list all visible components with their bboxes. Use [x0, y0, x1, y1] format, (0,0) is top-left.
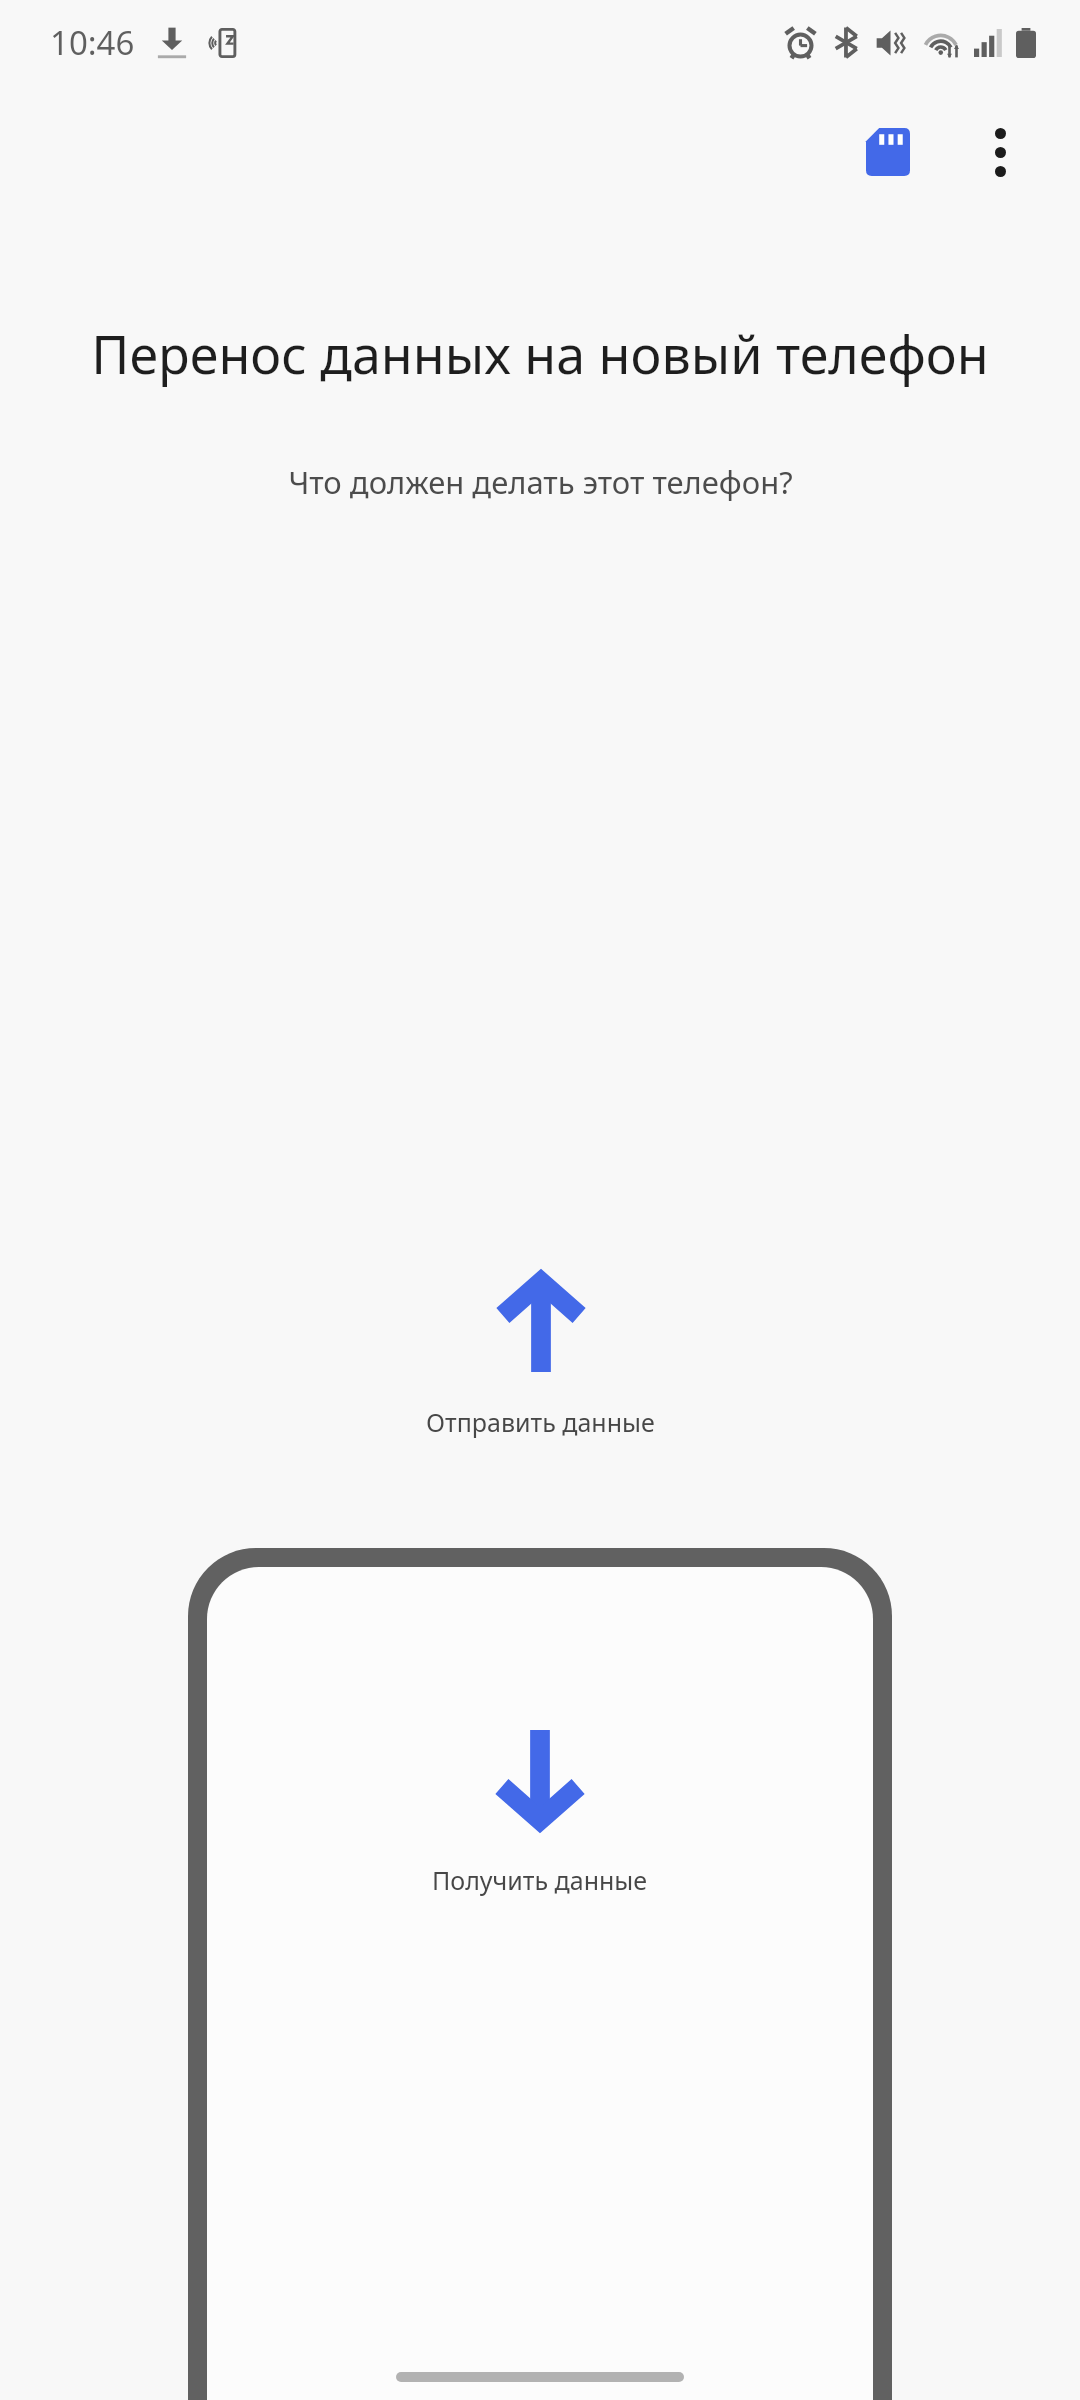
- staticText: 10:46: [50, 20, 135, 65]
- staticText: Получить данные: [432, 1863, 648, 1897]
- other: Отправить данные: [494, 1272, 588, 1372]
- other: Получить данные: [493, 1730, 587, 1830]
- button[interactable]: SD-карта: [832, 96, 944, 208]
- staticText: Перенос данных на новый телефон: [91, 318, 989, 389]
- button[interactable]: Получить данные: [432, 1730, 648, 1897]
- button[interactable]: Ещё: [944, 96, 1056, 208]
- staticText: Отправить данные: [426, 1405, 655, 1439]
- button[interactable]: Отправить данные: [426, 1272, 655, 1439]
- staticText: Что должен делать этот телефон?: [288, 461, 793, 503]
